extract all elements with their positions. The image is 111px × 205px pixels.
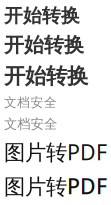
staticText: 图片转PDF xyxy=(4,171,107,200)
staticText: 文档安全 xyxy=(4,95,57,111)
staticText: 开始转换 xyxy=(4,4,80,27)
staticText: 图片转PDF xyxy=(4,137,107,166)
staticText: 开始转换 xyxy=(4,32,84,58)
staticText: 开始转换 xyxy=(4,63,88,90)
staticText: 文档安全 xyxy=(4,115,57,132)
